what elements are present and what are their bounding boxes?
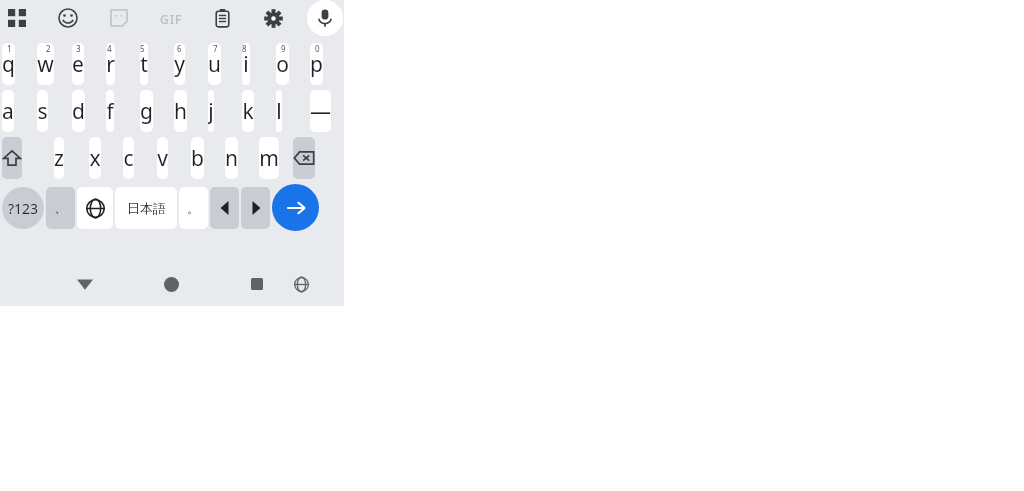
button[interactable]: Left	[210, 187, 239, 229]
button[interactable]: Language	[77, 187, 113, 229]
button[interactable]: Widgets	[1, 2, 33, 34]
button[interactable]: k	[242, 90, 254, 132]
staticText: 8	[242, 43, 247, 54]
staticText: GIF	[160, 11, 183, 27]
staticText: t	[140, 50, 148, 79]
button[interactable]: f	[106, 90, 114, 132]
staticText: g	[140, 97, 153, 126]
staticText: 、	[54, 199, 68, 217]
staticText: 。	[187, 200, 200, 216]
button[interactable]: w	[37, 43, 54, 85]
button[interactable]: g	[140, 90, 153, 132]
button[interactable]: Backspace	[293, 137, 315, 179]
button[interactable]: h	[174, 90, 187, 132]
button[interactable]: y	[174, 43, 185, 85]
staticText: v	[157, 144, 168, 173]
button[interactable]: e	[72, 43, 84, 85]
staticText: 6	[177, 43, 182, 54]
button[interactable]: u	[208, 43, 221, 85]
button[interactable]: o	[276, 43, 289, 85]
staticText: f	[106, 97, 114, 126]
button[interactable]: t	[140, 43, 148, 85]
button[interactable]: Stickers	[103, 2, 135, 34]
staticText: d	[72, 97, 85, 126]
button[interactable]: Voice input	[307, 0, 343, 36]
button[interactable]: —	[310, 90, 331, 132]
button[interactable]: 。	[179, 187, 208, 229]
button[interactable]: c	[123, 137, 134, 179]
button[interactable]: Settings	[257, 2, 289, 34]
button[interactable]: l	[276, 90, 282, 132]
button[interactable]: q	[2, 43, 15, 85]
staticText: q	[2, 50, 15, 79]
button[interactable]: z	[54, 137, 64, 179]
staticText: ?123	[8, 199, 39, 218]
staticText: 0	[315, 43, 320, 54]
staticText: p	[310, 50, 323, 79]
button[interactable]: 日本語	[115, 187, 177, 229]
button[interactable]: Enter	[272, 184, 319, 231]
button[interactable]: Shift	[2, 137, 22, 179]
button[interactable]: Home	[156, 269, 186, 299]
staticText: 3	[76, 43, 81, 54]
staticText: u	[208, 50, 221, 79]
button[interactable]: p	[310, 43, 323, 85]
staticText: 5	[140, 43, 145, 54]
staticText: x	[89, 144, 101, 173]
staticText: n	[225, 144, 238, 173]
staticText: o	[276, 50, 289, 79]
staticText: s	[37, 97, 48, 126]
staticText: 7	[213, 43, 218, 54]
button[interactable]: n	[225, 137, 238, 179]
button[interactable]: Emoji	[52, 2, 84, 34]
button[interactable]: Recents	[242, 269, 272, 299]
staticText: l	[276, 97, 282, 126]
staticText: 9	[281, 43, 286, 54]
staticText: c	[123, 144, 134, 173]
button[interactable]: Right	[241, 187, 270, 229]
button[interactable]: s	[37, 90, 48, 132]
button[interactable]: GIF	[155, 9, 187, 29]
staticText: r	[106, 50, 115, 79]
button[interactable]: Back	[70, 269, 100, 299]
staticText: —	[310, 97, 331, 126]
staticText: m	[259, 144, 279, 173]
staticText: h	[174, 97, 187, 126]
staticText: y	[174, 50, 185, 79]
staticText: 4	[107, 43, 112, 54]
button[interactable]: 、	[46, 187, 75, 229]
staticText: e	[72, 50, 84, 79]
button[interactable]: m	[259, 137, 279, 179]
button[interactable]: Clipboard	[206, 2, 238, 34]
staticText: a	[2, 97, 14, 126]
button[interactable]: r	[106, 43, 115, 85]
staticText: b	[191, 144, 204, 173]
staticText: w	[37, 50, 54, 79]
button[interactable]: j	[208, 90, 214, 132]
staticText: k	[242, 97, 254, 126]
button[interactable]: ?123	[2, 187, 44, 229]
button[interactable]: v	[157, 137, 168, 179]
staticText: z	[54, 144, 64, 173]
button[interactable]: i	[242, 43, 250, 85]
button[interactable]: d	[72, 90, 85, 132]
staticText: i	[243, 50, 249, 79]
button[interactable]: b	[191, 137, 204, 179]
button[interactable]: x	[89, 137, 101, 179]
staticText: 2	[46, 43, 51, 54]
staticText: j	[208, 97, 214, 126]
button[interactable]: Switch keyboard	[286, 269, 316, 299]
staticText: 日本語	[127, 200, 166, 216]
staticText: 1	[7, 43, 12, 54]
button[interactable]: a	[2, 90, 14, 132]
